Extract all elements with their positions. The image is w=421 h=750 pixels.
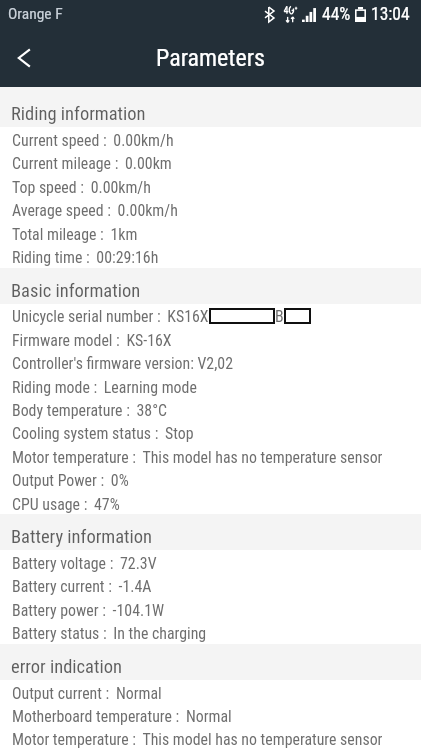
staticText: Current speed : 0.00km/h	[12, 131, 174, 150]
staticText: Firmware model : KS-16X	[12, 331, 172, 350]
staticText: Controller's firmware version: V2,02	[12, 354, 233, 373]
staticText: Battery information	[11, 526, 153, 548]
staticText: B	[275, 307, 284, 326]
staticText: error indication	[11, 656, 122, 678]
staticText: Total mileage : 1km	[12, 225, 138, 244]
staticText: 13:04	[371, 4, 410, 25]
staticText: Battery voltage : 72.3V	[12, 554, 157, 573]
staticText: Output current : Normal	[12, 684, 162, 703]
staticText: Current mileage : 0.00km	[12, 154, 172, 173]
staticText: Riding time : 00:29:16h	[12, 248, 159, 267]
staticText: Riding information	[11, 103, 146, 125]
staticText: Battery status : In the charging	[12, 624, 207, 643]
staticText: Basic information	[11, 280, 141, 302]
staticText: Output Power : 0%	[12, 471, 129, 490]
staticText: Riding mode : Learning mode	[12, 378, 197, 397]
staticText: Battery current : -1.4A	[12, 577, 152, 596]
staticText: Cooling system status : Stop	[12, 424, 194, 443]
staticText: Average speed : 0.00km/h	[12, 201, 178, 220]
button[interactable]: Back	[0, 31, 54, 85]
staticText: Motor temperature : This model has no te…	[12, 730, 383, 749]
staticText: Unicycle serial number : KS16X	[12, 307, 209, 326]
staticText: Top speed : 0.00km/h	[12, 178, 151, 197]
staticText: CPU usage : 47%	[12, 495, 120, 514]
staticText: Motherboard temperature : Normal	[12, 707, 232, 726]
staticText: 44%	[322, 4, 351, 25]
staticText: Orange F	[8, 5, 63, 23]
staticText: Motor temperature : This model has no te…	[12, 448, 383, 467]
staticText: Parameters	[156, 44, 265, 72]
staticText: Body temperature : 38°C	[12, 401, 168, 420]
staticText: Battery power : -104.1W	[12, 601, 165, 620]
